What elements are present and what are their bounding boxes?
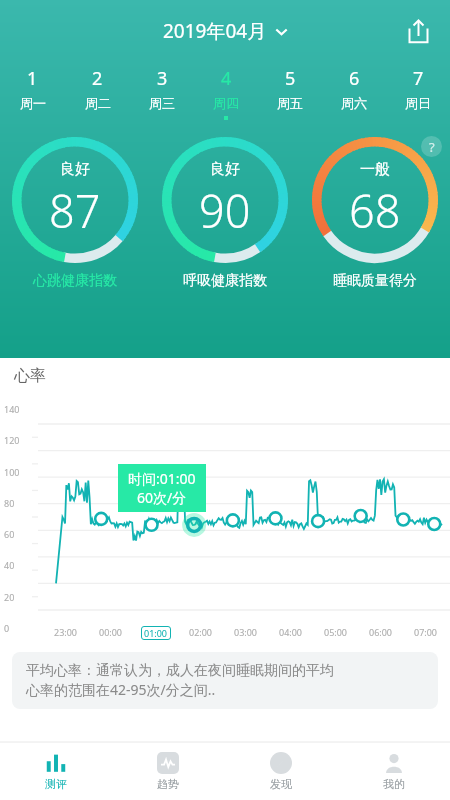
staticText: 140 <box>4 403 20 415</box>
staticText: 周一 <box>20 95 46 111</box>
button[interactable]: 6 <box>322 62 386 128</box>
staticText: 平均心率：通常认为，成人在夜间睡眠期间的平均 心率的范围在42-95次/分之间.… <box>26 662 334 699</box>
button[interactable]: 良好 <box>150 134 300 290</box>
staticText: 发现 <box>270 777 292 791</box>
button[interactable]: 5 <box>258 62 322 128</box>
staticText: 23:00 <box>54 626 78 638</box>
button[interactable]: 一般 <box>300 134 450 290</box>
button[interactable]: 2019年04月 <box>157 12 294 50</box>
staticText: 周六 <box>341 95 367 111</box>
button[interactable]: 良好 <box>0 134 150 290</box>
staticText: 周二 <box>85 95 111 111</box>
staticText: 02:00 <box>189 626 213 638</box>
staticText: 睡眠质量得分 <box>333 272 417 290</box>
staticText: 80 <box>4 497 15 509</box>
staticText: 100 <box>4 466 20 478</box>
button[interactable]: Help <box>421 136 442 157</box>
staticText: 00:00 <box>99 626 123 638</box>
staticText: 07:00 <box>414 626 438 638</box>
staticText: 120 <box>4 434 20 446</box>
staticText: 0 <box>4 622 10 634</box>
staticText: 04:00 <box>279 626 303 638</box>
staticText: 测评 <box>45 777 67 791</box>
button[interactable]: 我的 <box>337 742 450 800</box>
button[interactable]: 7 <box>386 62 450 128</box>
staticText: 40 <box>4 559 15 571</box>
staticText: 60 <box>4 528 15 540</box>
button[interactable]: Share <box>396 9 440 53</box>
staticText: 心率 <box>14 366 46 386</box>
staticText: 5 <box>285 66 296 91</box>
staticText: 时间:01:00 <box>128 469 196 488</box>
staticText: 良好 <box>210 160 240 179</box>
staticText: 87 <box>49 180 101 241</box>
button[interactable]: 3 <box>130 62 194 128</box>
staticText: 1 <box>27 66 38 91</box>
button[interactable]: 测评 <box>0 742 112 800</box>
staticText: 周四 <box>213 95 239 111</box>
staticText: 我的 <box>383 777 405 791</box>
staticText: 2019年04月 <box>163 18 267 44</box>
button[interactable]: 1 <box>0 62 65 128</box>
staticText: 呼吸健康指数 <box>183 272 267 290</box>
staticText: 6 <box>349 66 360 91</box>
staticText: 20 <box>4 591 15 603</box>
staticText: 周三 <box>149 95 175 111</box>
staticText: 01:00 <box>144 627 168 639</box>
staticText: 06:00 <box>369 626 393 638</box>
staticText: 03:00 <box>234 626 258 638</box>
staticText: ? <box>429 138 435 156</box>
staticText: 68 <box>349 180 401 241</box>
staticText: 90 <box>199 180 251 241</box>
button[interactable]: 发现 <box>224 742 337 800</box>
staticText: 2 <box>92 66 103 91</box>
staticText: 4 <box>221 66 232 91</box>
staticText: 趋势 <box>157 777 179 791</box>
staticText: 周五 <box>277 95 303 111</box>
staticText: 一般 <box>360 160 390 179</box>
staticText: 7 <box>413 66 424 91</box>
staticText: 周日 <box>405 95 431 111</box>
button[interactable]: 4 <box>194 62 258 128</box>
staticText: 心跳健康指数 <box>33 272 117 290</box>
staticText: 05:00 <box>324 626 348 638</box>
button[interactable]: 趋势 <box>112 742 224 800</box>
staticText: 3 <box>157 66 168 91</box>
staticText: 60次/分 <box>137 488 187 507</box>
button[interactable]: 2 <box>65 62 130 128</box>
staticText: 良好 <box>60 160 90 179</box>
